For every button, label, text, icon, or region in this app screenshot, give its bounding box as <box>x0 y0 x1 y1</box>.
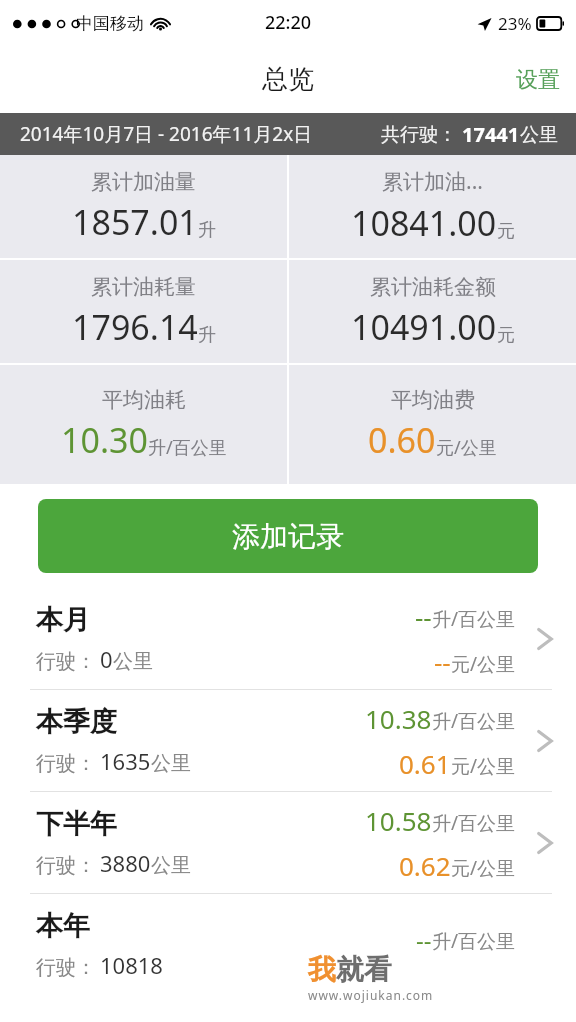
staticText: 我 <box>308 952 336 987</box>
staticText: 平均油费 <box>391 387 475 413</box>
staticText: 公里 <box>151 751 191 776</box>
staticText: 3880 <box>100 848 151 878</box>
staticText: 行驶： <box>36 853 96 878</box>
button[interactable]: 本年 <box>0 894 576 995</box>
staticText: 升 <box>198 324 216 347</box>
staticText: 中国移动 <box>76 13 144 34</box>
staticText: 累计油耗量 <box>91 274 196 300</box>
staticText: 10.58 <box>365 803 432 838</box>
staticText: 下半年 <box>36 807 117 841</box>
staticText: -- <box>434 644 451 679</box>
staticText: 23% <box>498 12 532 35</box>
button[interactable]: 累计加油... <box>289 155 576 258</box>
staticText: 22:20 <box>265 10 312 35</box>
button[interactable]: 本月 <box>0 588 576 689</box>
staticText: -- <box>415 599 432 634</box>
staticText: 2014年10月7日 - 2016年11月2x日 <box>20 121 313 147</box>
staticText: 元 <box>497 324 515 347</box>
button[interactable]: 平均油费 <box>289 365 576 484</box>
staticText: 行驶： <box>36 649 96 674</box>
staticText: 升/百公里 <box>148 435 227 460</box>
staticText: 1635 <box>100 746 151 776</box>
other: 查看详情 <box>536 828 554 858</box>
staticText: 共行驶： <box>381 123 457 147</box>
staticText: 公里 <box>151 853 191 878</box>
staticText: 升/百公里 <box>432 708 516 734</box>
staticText: 就看 <box>336 952 392 987</box>
staticText: 行驶： <box>36 751 96 776</box>
staticText: 0.61 <box>399 746 451 781</box>
staticText: 1857.01 <box>72 199 198 245</box>
staticText: 元/公里 <box>451 855 516 881</box>
staticText: 公里 <box>113 649 153 674</box>
staticText: 升/百公里 <box>432 928 516 954</box>
staticText: 10841.00 <box>351 200 497 246</box>
button[interactable]: 累计油耗金额 <box>289 260 576 363</box>
staticText: 本月 <box>36 603 90 637</box>
button[interactable]: 累计加油量 <box>0 155 287 258</box>
staticText: 0.62 <box>399 848 451 883</box>
staticText: www.wojiukan.com <box>308 987 434 1003</box>
staticText: 10491.00 <box>351 304 497 350</box>
button[interactable]: 本季度 <box>0 690 576 791</box>
staticText: 0.60 <box>368 417 436 463</box>
staticText: 元/公里 <box>451 753 516 779</box>
staticText: 17441 <box>462 121 520 148</box>
staticText: 累计加油量 <box>91 169 196 195</box>
staticText: 元 <box>497 220 515 243</box>
staticText: 元/公里 <box>451 651 516 677</box>
other: 查看详情 <box>536 726 554 756</box>
button[interactable]: 下半年 <box>0 792 576 893</box>
button[interactable]: 添加记录 <box>38 499 538 573</box>
staticText: 升/百公里 <box>432 606 516 632</box>
staticText: 累计油耗金额 <box>370 274 496 300</box>
staticText: 本年 <box>36 909 90 943</box>
staticText: 平均油耗 <box>102 387 186 413</box>
staticText: 元/公里 <box>436 435 497 460</box>
staticText: 总览 <box>262 63 314 96</box>
staticText: 升 <box>198 219 216 242</box>
staticText: 1796.14 <box>72 304 198 350</box>
staticText: 10818 <box>100 950 163 980</box>
staticText: -- <box>416 923 432 956</box>
staticText: 10.30 <box>61 417 148 463</box>
staticText: 公里 <box>520 123 558 147</box>
staticText: 行驶： <box>36 955 96 980</box>
staticText: 设置 <box>516 66 560 94</box>
button[interactable]: 平均油耗 <box>0 365 287 484</box>
button[interactable]: 累计油耗量 <box>0 260 287 363</box>
staticText: 添加记录 <box>232 519 344 554</box>
other: 查看详情 <box>536 624 554 654</box>
staticText: 0 <box>100 644 113 674</box>
button[interactable]: 设置 <box>500 56 576 104</box>
staticText: 10.38 <box>365 701 432 736</box>
staticText: 升/百公里 <box>432 810 516 836</box>
staticText: 本季度 <box>36 705 117 739</box>
staticText: 累计加油... <box>382 167 483 196</box>
